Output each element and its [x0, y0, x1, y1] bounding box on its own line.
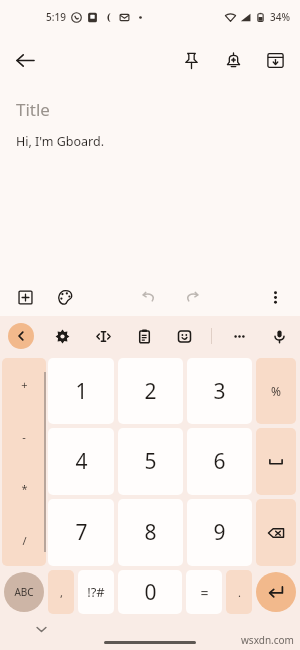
button[interactable]: Collapse toolbar: [8, 323, 34, 349]
staticText: 6: [213, 447, 226, 476]
button[interactable]: .: [226, 570, 252, 614]
button[interactable]: More options: [260, 282, 290, 312]
staticText: 9: [213, 518, 226, 547]
staticText: =: [200, 583, 209, 602]
staticText: !?#: [87, 583, 105, 601]
button[interactable]: Backspace: [256, 499, 296, 566]
button[interactable]: Stickers: [171, 323, 197, 349]
button[interactable]: Add: [10, 282, 40, 312]
button[interactable]: 4: [48, 428, 114, 495]
button[interactable]: Settings: [49, 323, 75, 349]
button[interactable]: 5: [118, 428, 183, 495]
staticText: 3: [213, 377, 226, 406]
button[interactable]: 7: [48, 499, 114, 566]
button[interactable]: Archive: [258, 43, 292, 77]
button[interactable]: Text editing: [90, 323, 116, 349]
button[interactable]: Clipboard: [131, 323, 157, 349]
button[interactable]: 9: [187, 499, 252, 566]
staticText: 2: [144, 377, 157, 406]
button[interactable]: !?#: [78, 570, 114, 614]
staticText: 5:19: [46, 10, 66, 24]
button[interactable]: ABC: [4, 572, 44, 612]
button[interactable]: Enter: [256, 572, 296, 612]
staticText: /: [22, 533, 27, 548]
button[interactable]: Palette: [50, 282, 80, 312]
button[interactable]: Pin: [174, 43, 208, 77]
staticText: 0: [144, 578, 157, 607]
staticText: -: [22, 429, 26, 444]
button[interactable]: 0: [118, 570, 182, 614]
staticText: +: [21, 377, 28, 392]
button[interactable]: 8: [118, 499, 183, 566]
button[interactable]: More: [226, 323, 252, 349]
button[interactable]: Hide keyboard: [30, 618, 52, 640]
button[interactable]: *: [2, 462, 46, 514]
staticText: *: [21, 481, 28, 496]
staticText: 1: [75, 377, 88, 406]
staticText: 7: [75, 518, 88, 547]
button[interactable]: Space: [256, 428, 296, 495]
staticText: ABC: [14, 585, 34, 599]
button[interactable]: =: [186, 570, 222, 614]
button[interactable]: Undo: [133, 282, 163, 312]
button[interactable]: %: [256, 358, 296, 424]
staticText: ,: [60, 585, 63, 600]
button[interactable]: +: [2, 358, 46, 410]
button[interactable]: Back: [8, 43, 42, 77]
staticText: 5: [144, 447, 157, 476]
button[interactable]: 1: [48, 358, 114, 424]
button[interactable]: 6: [187, 428, 252, 495]
button[interactable]: ,: [48, 570, 74, 614]
button[interactable]: Reminder: [216, 43, 250, 77]
button[interactable]: Voice input: [266, 323, 292, 349]
button[interactable]: 2: [118, 358, 183, 424]
staticText: 34%: [270, 10, 290, 24]
button[interactable]: /: [2, 514, 46, 566]
staticText: Title: [16, 98, 50, 121]
button[interactable]: 3: [187, 358, 252, 424]
staticText: wsxdn.com: [241, 633, 294, 647]
staticText: 8: [144, 518, 157, 547]
staticText: .: [238, 585, 241, 600]
staticText: %: [271, 383, 281, 399]
button[interactable]: Redo: [177, 282, 207, 312]
button[interactable]: -: [2, 410, 46, 462]
staticText: 4: [75, 447, 88, 476]
staticText: Hi, I'm Gboard.: [16, 133, 105, 150]
